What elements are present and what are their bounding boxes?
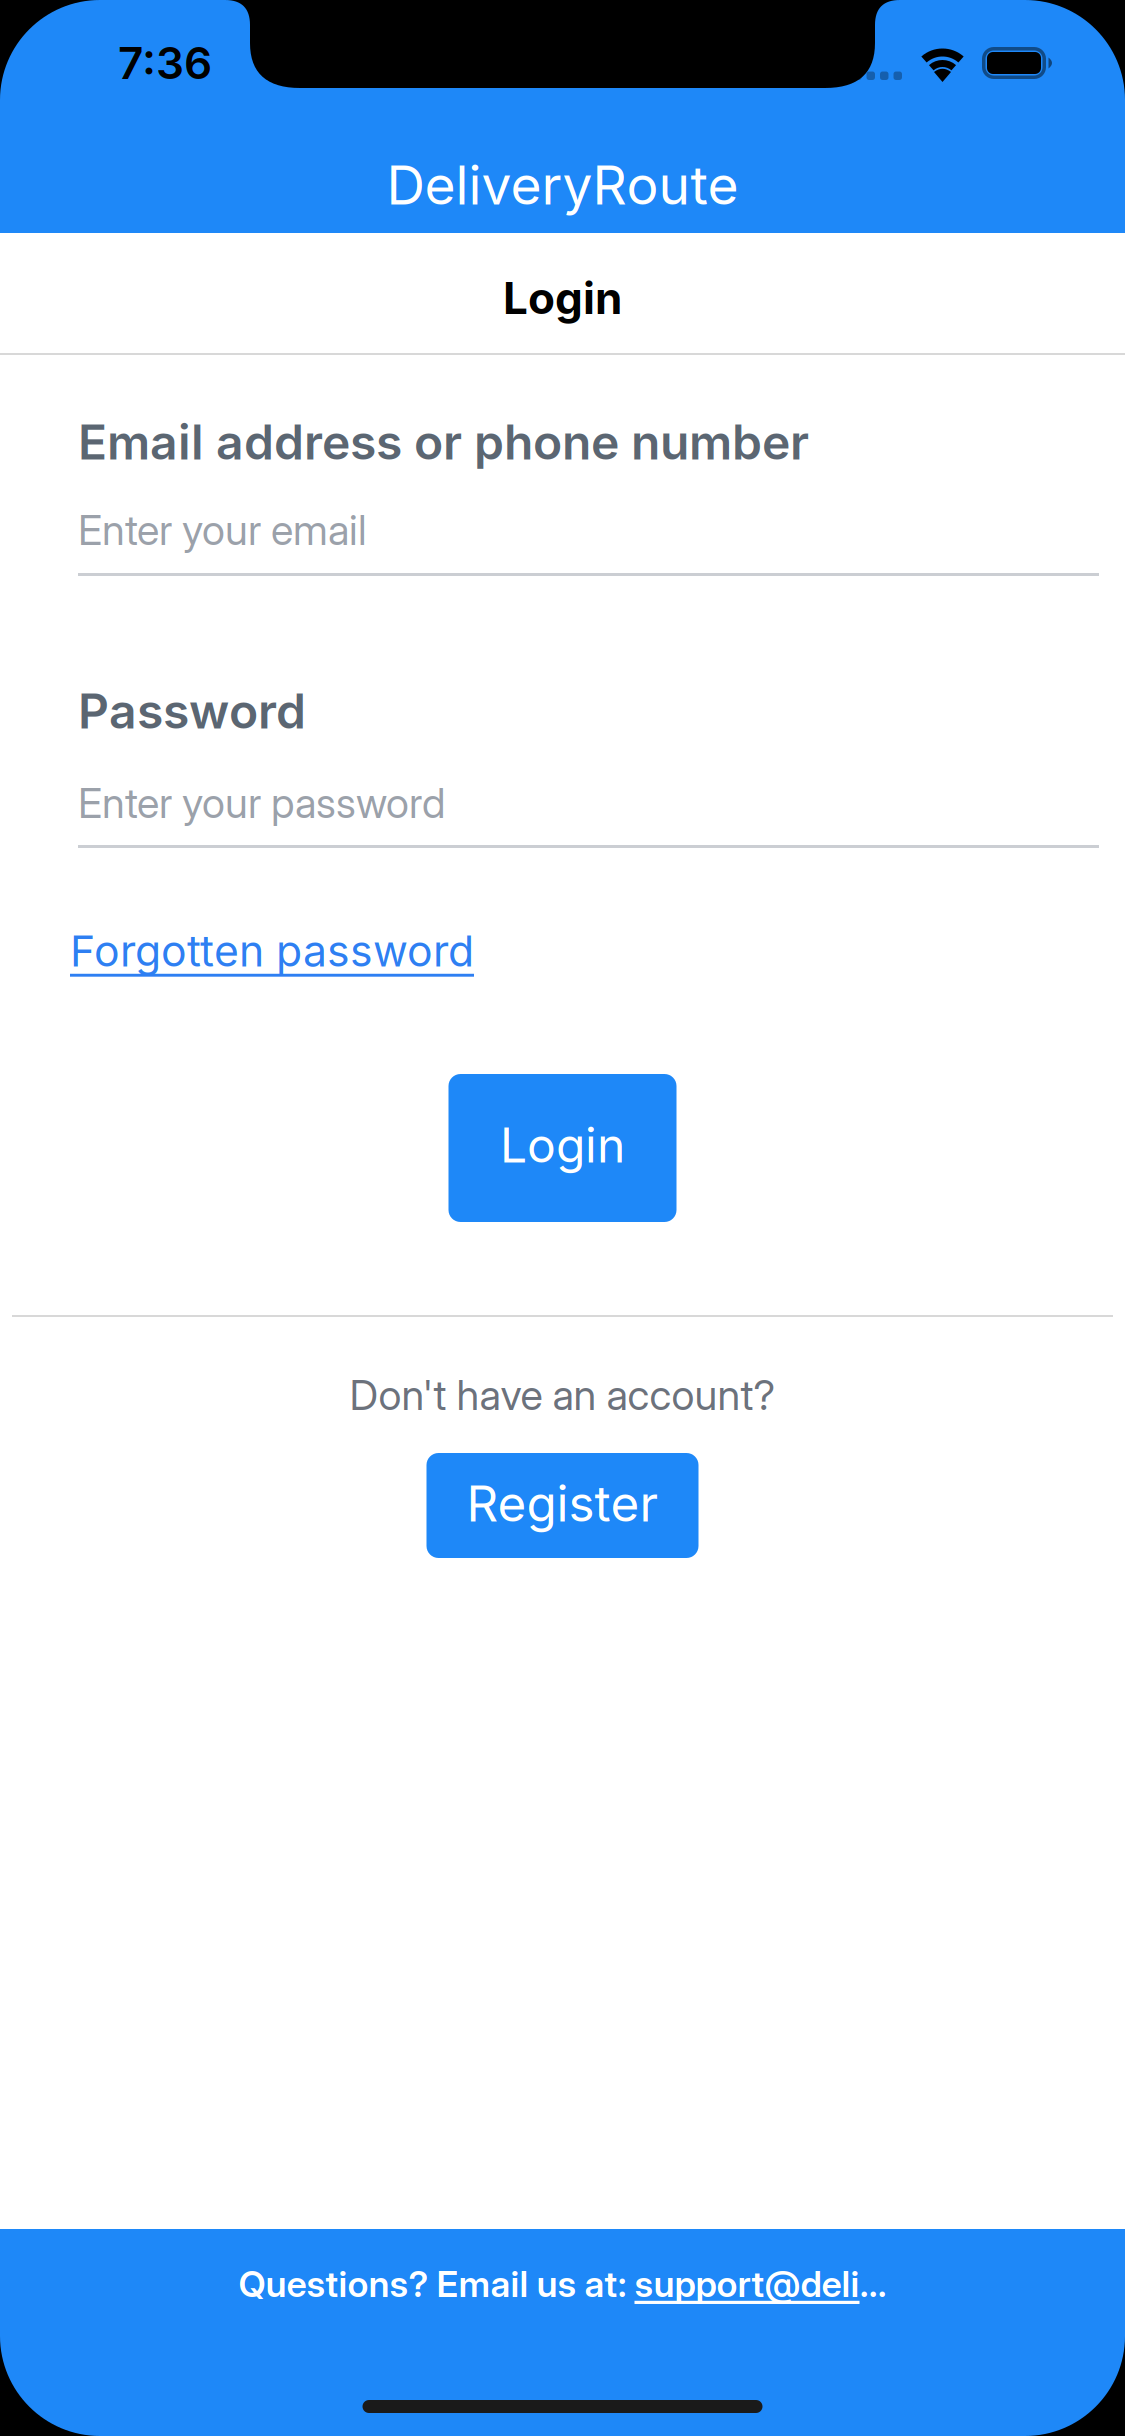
staticText: Enter your password: [78, 779, 445, 827]
staticText: Login: [503, 272, 622, 324]
staticText: Questions? Email us at:: [238, 2263, 634, 2305]
staticText: Login: [500, 1117, 625, 1173]
staticText: support@deli: [634, 2263, 859, 2305]
staticText: Password: [78, 683, 306, 739]
staticText: Enter your email: [78, 506, 367, 554]
button[interactable]: Login: [448, 1074, 676, 1222]
staticText: Register: [466, 1474, 658, 1533]
button[interactable]: Register: [426, 1453, 698, 1558]
staticText: DeliveryRoute: [386, 153, 738, 216]
staticText: ...: [859, 2263, 886, 2305]
button[interactable]: Forgotten password: [70, 926, 474, 976]
staticText: Forgotten password: [70, 926, 474, 976]
staticText: Email address or phone number: [78, 414, 809, 470]
button[interactable]: support@deli: [634, 2263, 859, 2305]
staticText: Don't have an account?: [349, 1371, 775, 1419]
staticText: 7:36: [118, 37, 212, 89]
